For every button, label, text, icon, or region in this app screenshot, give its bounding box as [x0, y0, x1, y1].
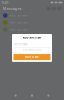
staticText: ADD AN ITEM [22, 36, 41, 39]
staticText: Name Surname [9, 21, 28, 24]
staticText: ADD ITEM [25, 55, 39, 59]
button[interactable]: Calls [31, 94, 33, 96]
staticText: Name Surname [9, 28, 28, 31]
staticText: Name Surname [9, 14, 28, 17]
staticText: Item name [14, 42, 28, 46]
staticText: Give the new item a short name [22, 49, 41, 51]
button[interactable]: Settings [47, 94, 49, 96]
button[interactable]: Chats [14, 94, 16, 96]
staticText: Messages [2, 6, 21, 11]
button[interactable]: Name Surname [0, 26, 64, 33]
staticText: 9:41 [1, 0, 8, 5]
button[interactable]: Compose [52, 6, 56, 10]
button[interactable]: Search [46, 6, 50, 10]
button[interactable]: Profile [57, 6, 61, 10]
button[interactable]: Name Surname [0, 12, 64, 19]
button[interactable]: ADD ITEM [13, 54, 50, 60]
button[interactable]: Name Surname [0, 19, 64, 26]
